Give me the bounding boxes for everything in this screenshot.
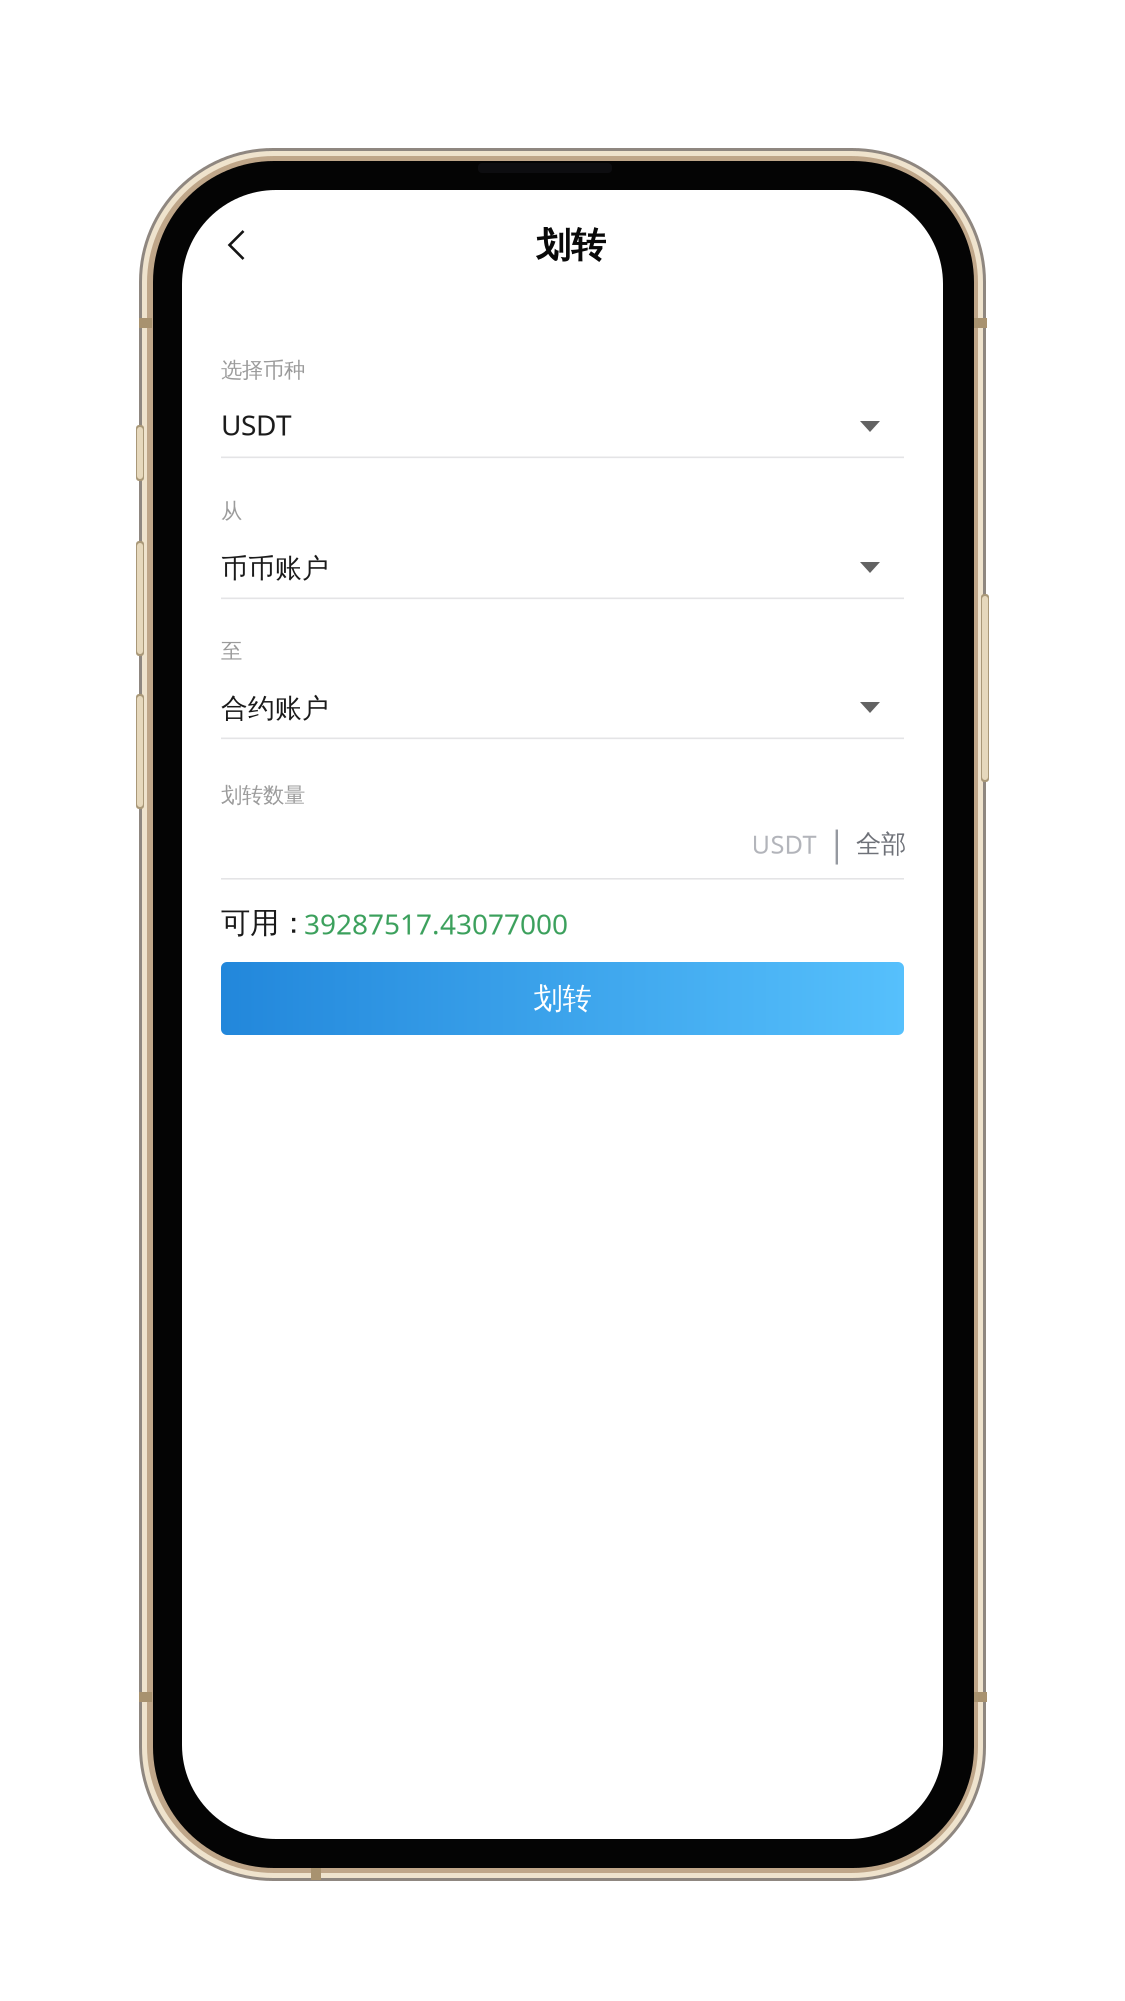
button[interactable]: Back bbox=[200, 208, 274, 282]
staticText: 39287517.43077000 bbox=[304, 905, 568, 942]
staticText: USDT bbox=[221, 406, 292, 443]
staticText: 从 bbox=[221, 498, 242, 524]
staticText: 至 bbox=[221, 638, 242, 664]
staticText: 合约账户 bbox=[221, 692, 329, 725]
button[interactable]: 全部 bbox=[856, 822, 906, 866]
button[interactable]: 至 bbox=[221, 638, 904, 756]
staticText: 可用： bbox=[221, 905, 308, 941]
staticText: 划转数量 bbox=[221, 782, 305, 808]
button[interactable]: 划转 bbox=[221, 962, 904, 1035]
button[interactable]: 从 bbox=[221, 498, 904, 616]
staticText: 划转 bbox=[536, 224, 606, 267]
staticText: USDT bbox=[752, 827, 817, 861]
staticText: 币币账户 bbox=[221, 552, 329, 585]
staticText: 选择币种 bbox=[221, 357, 305, 383]
staticText: 全部 bbox=[856, 828, 906, 859]
staticText: 划转 bbox=[533, 980, 591, 1016]
button[interactable]: 选择币种 bbox=[221, 357, 904, 475]
